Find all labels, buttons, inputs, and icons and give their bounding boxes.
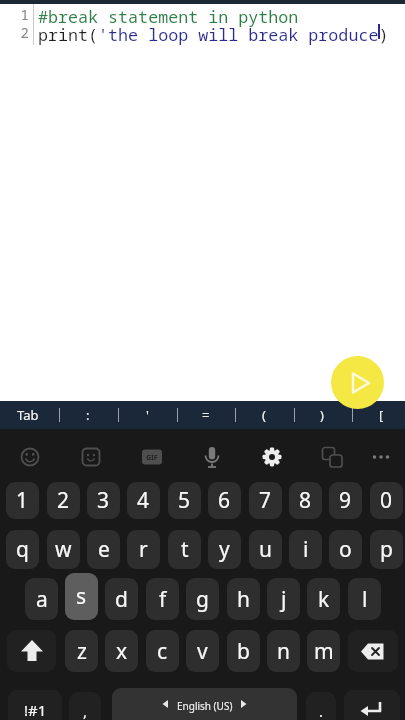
button[interactable]: f xyxy=(146,578,179,620)
button[interactable]: . xyxy=(306,692,336,720)
button[interactable]: p xyxy=(370,530,403,569)
staticText: y xyxy=(219,535,230,564)
button[interactable]: ( xyxy=(244,401,284,429)
button[interactable]: s xyxy=(65,573,98,620)
button[interactable]: h xyxy=(227,578,260,620)
staticText: [ xyxy=(379,406,384,424)
staticText: : xyxy=(86,406,90,424)
button[interactable] xyxy=(257,442,287,472)
staticText: d xyxy=(115,585,128,614)
button[interactable]: b xyxy=(227,630,260,672)
staticText: ) xyxy=(320,406,324,424)
staticText: 2 xyxy=(14,23,29,42)
button[interactable]: e xyxy=(87,530,120,569)
staticText: 2 xyxy=(57,486,70,515)
button[interactable]: q xyxy=(6,530,39,569)
button[interactable]: 0 xyxy=(370,482,403,519)
button[interactable]: u xyxy=(249,530,282,569)
button[interactable] xyxy=(366,442,396,472)
staticText: 4 xyxy=(137,486,150,515)
staticText: !#1 xyxy=(24,700,47,720)
staticText: Tab xyxy=(17,406,39,424)
button[interactable]: a xyxy=(25,578,58,620)
button[interactable]: English (US) xyxy=(112,688,297,720)
button[interactable] xyxy=(348,630,398,672)
staticText: ( xyxy=(262,406,266,424)
staticText: a xyxy=(36,585,48,614)
staticText: English (US) xyxy=(177,699,233,713)
button[interactable]: Tab xyxy=(8,401,48,429)
staticText: 3 xyxy=(97,486,110,515)
staticText: 8 xyxy=(299,486,312,515)
button[interactable]: 6 xyxy=(208,482,241,519)
button[interactable] xyxy=(137,442,167,472)
button[interactable]: w xyxy=(47,530,80,569)
staticText: m xyxy=(314,637,334,666)
button[interactable]: g xyxy=(186,578,219,620)
staticText: , xyxy=(83,701,88,720)
button[interactable] xyxy=(197,442,227,472)
button[interactable]: = xyxy=(186,401,226,429)
staticText: f xyxy=(159,585,167,614)
button[interactable]: k xyxy=(307,578,340,620)
staticText: 9 xyxy=(339,486,352,515)
staticText: 0 xyxy=(380,486,393,515)
button[interactable]: ' xyxy=(127,401,167,429)
button[interactable] xyxy=(76,442,106,472)
staticText: #break statement in python xyxy=(38,5,299,28)
staticText: print('the loop will break produce) xyxy=(38,23,389,46)
staticText: p xyxy=(380,535,393,564)
button[interactable]: [ xyxy=(361,401,401,429)
button[interactable]: v xyxy=(186,630,219,672)
button[interactable]: 5 xyxy=(168,482,201,519)
button[interactable]: 7 xyxy=(249,482,282,519)
staticText: 1 xyxy=(14,5,29,24)
staticText: e xyxy=(98,535,110,564)
button[interactable]: m xyxy=(307,630,340,672)
button[interactable]: t xyxy=(168,530,201,569)
button[interactable]: x xyxy=(105,630,138,672)
button[interactable]: 4 xyxy=(127,482,160,519)
button[interactable] xyxy=(317,442,347,472)
staticText: h xyxy=(237,585,250,614)
button[interactable]: r xyxy=(127,530,160,569)
button[interactable] xyxy=(15,442,45,472)
staticText: k xyxy=(318,585,330,614)
button[interactable]: l xyxy=(348,578,381,620)
button[interactable]: 8 xyxy=(289,482,322,519)
button[interactable]: c xyxy=(146,630,179,672)
staticText: r xyxy=(139,535,148,564)
button[interactable] xyxy=(344,690,400,720)
button[interactable]: 3 xyxy=(87,482,120,519)
staticText: n xyxy=(277,637,290,666)
staticText: 1 xyxy=(16,486,29,515)
staticText: 7 xyxy=(259,486,272,515)
button[interactable]: y xyxy=(208,530,241,569)
button[interactable]: 1 xyxy=(6,482,39,519)
button[interactable]: : xyxy=(68,401,108,429)
button[interactable] xyxy=(331,356,384,409)
staticText: 5 xyxy=(178,486,191,515)
button[interactable]: !#1 xyxy=(8,690,62,720)
staticText: s xyxy=(76,582,87,611)
button[interactable]: d xyxy=(105,578,138,620)
staticText: j xyxy=(281,585,287,614)
button[interactable] xyxy=(7,630,56,672)
staticText: l xyxy=(362,585,368,614)
staticText: i xyxy=(303,535,309,564)
button[interactable]: j xyxy=(267,578,300,620)
staticText: g xyxy=(196,585,209,614)
staticText: c xyxy=(157,637,168,666)
button[interactable]: 2 xyxy=(47,482,80,519)
button[interactable]: ) xyxy=(302,401,342,429)
button[interactable]: , xyxy=(69,692,101,720)
button[interactable]: o xyxy=(329,530,362,569)
staticText: b xyxy=(237,637,250,666)
button[interactable]: z xyxy=(65,630,98,672)
button[interactable]: n xyxy=(267,630,300,672)
button[interactable]: 9 xyxy=(329,482,362,519)
button[interactable]: i xyxy=(289,530,322,569)
staticText: . xyxy=(319,701,324,720)
staticText: q xyxy=(16,535,29,564)
staticText: ' xyxy=(146,406,149,424)
